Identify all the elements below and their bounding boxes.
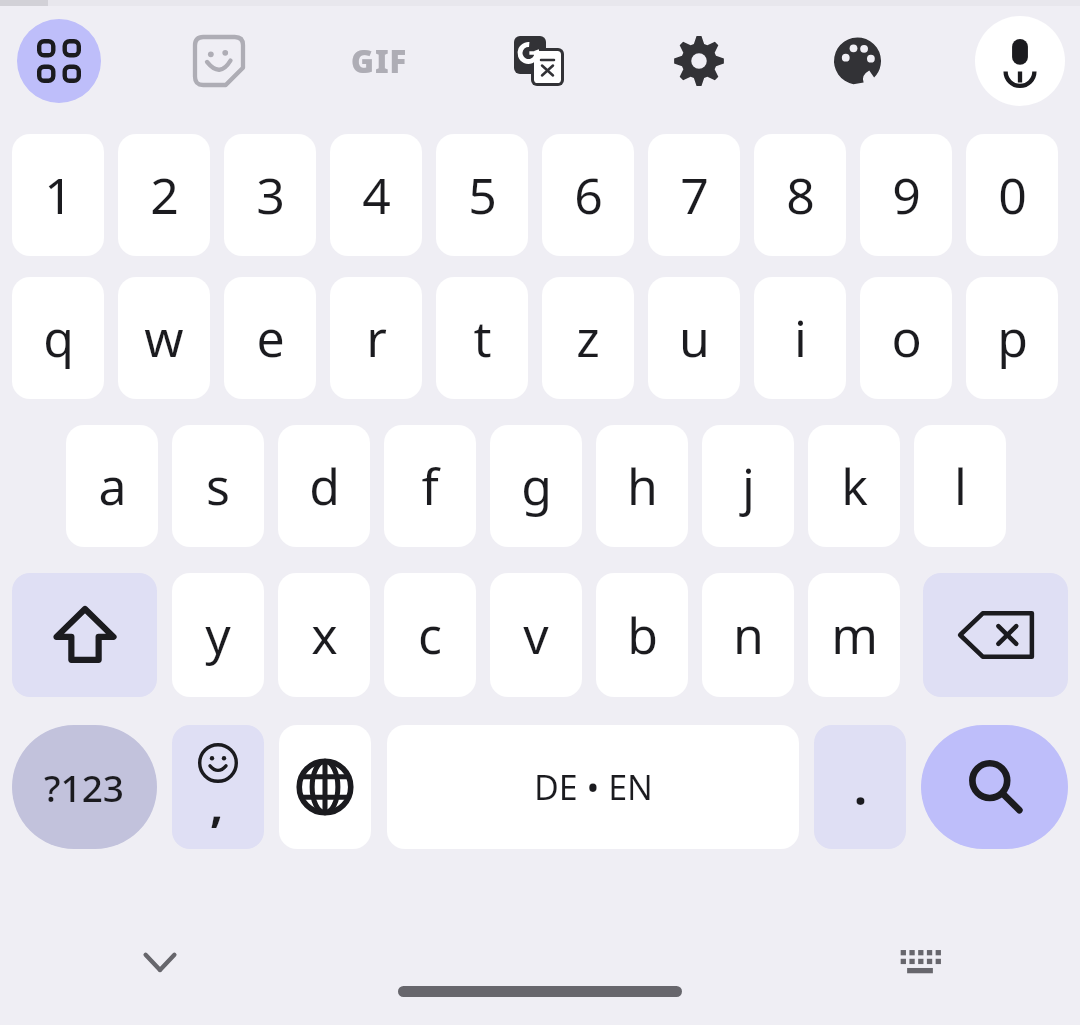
staticText: d	[309, 452, 340, 520]
button[interactable]: Open features	[17, 19, 101, 103]
button[interactable]: f	[384, 425, 476, 547]
staticText: DE • EN	[534, 764, 653, 810]
button[interactable]: Hide keyboard	[120, 922, 200, 1002]
staticText: l	[954, 452, 967, 520]
staticText: 3	[256, 161, 285, 229]
button[interactable]: r	[330, 277, 422, 399]
staticText: z	[576, 304, 600, 372]
button[interactable]: ?123	[12, 725, 157, 849]
button[interactable]: w	[118, 277, 210, 399]
button[interactable]: z	[542, 277, 634, 399]
button[interactable]: b	[596, 573, 688, 697]
staticText: t	[473, 304, 492, 372]
button[interactable]: t	[436, 277, 528, 399]
button[interactable]: p	[966, 277, 1058, 399]
staticText: 2	[150, 161, 179, 229]
button[interactable]: j	[702, 425, 794, 547]
button[interactable]: Settings	[657, 19, 741, 103]
staticText: w	[144, 304, 184, 372]
staticText: s	[206, 452, 230, 520]
staticText: j	[742, 452, 755, 520]
button[interactable]: Backspace	[923, 573, 1068, 697]
staticText: 9	[892, 161, 921, 229]
button[interactable]: Emoji and comma	[172, 725, 264, 849]
button[interactable]: Search	[921, 725, 1068, 849]
staticText: e	[256, 304, 285, 372]
button[interactable]: 2	[118, 134, 210, 256]
button[interactable]: a	[66, 425, 158, 547]
staticText: a	[98, 452, 127, 520]
staticText: 1	[44, 161, 73, 229]
staticText: .	[854, 756, 867, 819]
button[interactable]: Switch keyboard	[880, 922, 960, 1002]
button[interactable]: 4	[330, 134, 422, 256]
button[interactable]: q	[12, 277, 104, 399]
button[interactable]: c	[384, 573, 476, 697]
staticText: p	[997, 304, 1028, 372]
button[interactable]: h	[596, 425, 688, 547]
button[interactable]: x	[278, 573, 370, 697]
staticText: ,	[210, 773, 224, 836]
button[interactable]: Themes	[817, 19, 901, 103]
button[interactable]: y	[172, 573, 264, 697]
staticText: f	[421, 452, 439, 520]
staticText: g	[521, 452, 552, 520]
button[interactable]: Shift	[12, 573, 157, 697]
staticText: 8	[786, 161, 815, 229]
button[interactable]: Translate	[497, 19, 581, 103]
staticText: 5	[468, 161, 497, 229]
staticText: u	[679, 304, 710, 372]
staticText: x	[311, 601, 338, 669]
staticText: q	[43, 304, 74, 372]
staticText: c	[418, 601, 442, 669]
button[interactable]: k	[808, 425, 900, 547]
staticText: r	[366, 304, 387, 372]
staticText: ?123	[44, 762, 125, 812]
button[interactable]: l	[914, 425, 1006, 547]
button[interactable]: Voice input	[975, 16, 1065, 106]
staticText: 4	[362, 161, 391, 229]
button[interactable]: u	[648, 277, 740, 399]
staticText: v	[523, 601, 549, 669]
button[interactable]: e	[224, 277, 316, 399]
button[interactable]: m	[808, 573, 900, 697]
staticText: y	[205, 601, 231, 669]
staticText: 7	[680, 161, 709, 229]
button[interactable]: .	[814, 725, 906, 849]
button[interactable]: s	[172, 425, 264, 547]
staticText: m	[831, 601, 878, 669]
staticText: 0	[998, 161, 1027, 229]
button[interactable]: Change language	[279, 725, 371, 849]
staticText: o	[891, 304, 922, 372]
button[interactable]: 7	[648, 134, 740, 256]
button[interactable]: o	[860, 277, 952, 399]
staticText: i	[794, 304, 807, 372]
button[interactable]: d	[278, 425, 370, 547]
button[interactable]: i	[754, 277, 846, 399]
button[interactable]: Stickers	[177, 19, 261, 103]
button[interactable]: 5	[436, 134, 528, 256]
staticText: 6	[574, 161, 603, 229]
button[interactable]: 8	[754, 134, 846, 256]
button[interactable]: 0	[966, 134, 1058, 256]
button[interactable]: n	[702, 573, 794, 697]
button[interactable]: 9	[860, 134, 952, 256]
button[interactable]: 3	[224, 134, 316, 256]
staticText: b	[627, 601, 658, 669]
button[interactable]: 1	[12, 134, 104, 256]
staticText: n	[733, 601, 764, 669]
staticText: k	[841, 452, 868, 520]
button[interactable]: DE • EN	[387, 725, 799, 849]
button[interactable]: GIF	[337, 19, 421, 103]
button[interactable]: v	[490, 573, 582, 697]
staticText: h	[627, 452, 658, 520]
button[interactable]: g	[490, 425, 582, 547]
staticText: GIF	[351, 40, 408, 82]
button[interactable]: 6	[542, 134, 634, 256]
